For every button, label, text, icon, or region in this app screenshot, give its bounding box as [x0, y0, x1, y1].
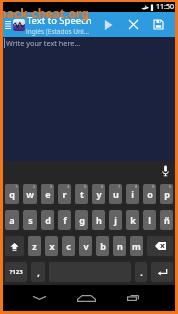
button[interactable]: v	[79, 236, 92, 256]
button[interactable]: ñ	[160, 210, 173, 230]
staticText: z	[32, 240, 37, 252]
staticText: n	[117, 240, 123, 252]
staticText: r	[62, 188, 67, 200]
button[interactable]: i	[126, 184, 139, 204]
staticText: c	[66, 240, 71, 252]
staticText: e	[45, 188, 51, 200]
button[interactable]: g	[75, 210, 88, 230]
button[interactable]: ,	[31, 262, 45, 282]
staticText: b	[100, 240, 106, 252]
button[interactable]: Shift	[5, 236, 24, 256]
button[interactable]: m	[130, 236, 143, 256]
button[interactable]: b	[96, 236, 109, 256]
button[interactable]: y	[92, 184, 105, 204]
button[interactable]: r	[58, 184, 71, 204]
button[interactable]: s	[23, 210, 37, 230]
staticText: s	[28, 214, 33, 226]
button[interactable]: c	[62, 236, 75, 256]
staticText: .	[140, 266, 143, 278]
staticText: 0	[169, 184, 172, 189]
staticText: k	[130, 214, 136, 226]
staticText: f	[63, 214, 67, 226]
staticText: 7	[118, 184, 121, 189]
staticText: ?123	[9, 268, 23, 276]
staticText: t	[80, 188, 84, 200]
staticText: Text to Speech	[27, 14, 92, 27]
button[interactable]: l	[143, 210, 156, 230]
staticText: y	[96, 188, 102, 200]
staticText: m	[132, 240, 141, 252]
button[interactable]: k	[126, 210, 139, 230]
button[interactable]: Close	[121, 12, 146, 37]
staticText: 8	[135, 184, 138, 189]
staticText: ,	[37, 266, 40, 278]
staticText: 5	[84, 184, 87, 189]
button[interactable]: e	[41, 184, 54, 204]
button[interactable]: Enter	[151, 262, 173, 282]
button[interactable]: p	[160, 184, 173, 204]
button[interactable]: d	[41, 210, 54, 230]
button[interactable]: Home	[73, 285, 99, 311]
staticText: Write your text here...	[6, 38, 81, 48]
button[interactable]: t	[75, 184, 88, 204]
staticText: hack-cheat.org	[0, 5, 89, 21]
staticText: q	[9, 188, 15, 200]
staticText: o	[147, 188, 153, 200]
staticText: p	[164, 188, 170, 200]
button[interactable]: j	[109, 210, 122, 230]
staticText: i	[131, 188, 134, 200]
staticText: 6	[101, 184, 104, 189]
button[interactable]: f	[58, 210, 71, 230]
button[interactable]: h	[92, 210, 105, 230]
staticText: h	[96, 214, 102, 226]
button[interactable]: Back	[26, 285, 52, 311]
staticText: 4	[67, 184, 70, 189]
button[interactable]: Save	[146, 12, 171, 37]
button[interactable]: u	[109, 184, 122, 204]
staticText: inglés (Estados Uni...	[26, 27, 89, 36]
button[interactable]: o	[143, 184, 156, 204]
staticText: 3	[50, 184, 53, 189]
staticText: v	[83, 240, 89, 252]
staticText: ñ	[164, 214, 170, 226]
staticText: g	[79, 214, 85, 226]
button[interactable]: Play	[96, 12, 121, 37]
staticText: d	[45, 214, 51, 226]
staticText: 1	[15, 184, 18, 189]
button[interactable]: Navigate up	[3, 12, 13, 37]
staticText: j	[114, 214, 117, 226]
button[interactable]: q	[5, 184, 19, 204]
button[interactable]: x	[45, 236, 58, 256]
staticText: 11:50	[156, 2, 174, 12]
button[interactable]: Recents	[120, 285, 146, 311]
button[interactable]: w	[23, 184, 37, 204]
staticText: 9	[152, 184, 155, 189]
button[interactable]: .	[135, 262, 147, 282]
button[interactable]: Backspace	[147, 236, 173, 256]
staticText: u	[113, 188, 119, 200]
staticText: w	[26, 188, 34, 200]
button[interactable]: a	[5, 210, 19, 230]
staticText: a	[9, 214, 15, 226]
button[interactable]: n	[113, 236, 126, 256]
button[interactable]: ?123	[5, 262, 27, 282]
staticText: 2	[33, 184, 36, 189]
staticText: l	[148, 214, 151, 226]
staticText: x	[49, 240, 55, 252]
button[interactable]: Voice input	[158, 161, 172, 181]
button[interactable]: z	[28, 236, 41, 256]
